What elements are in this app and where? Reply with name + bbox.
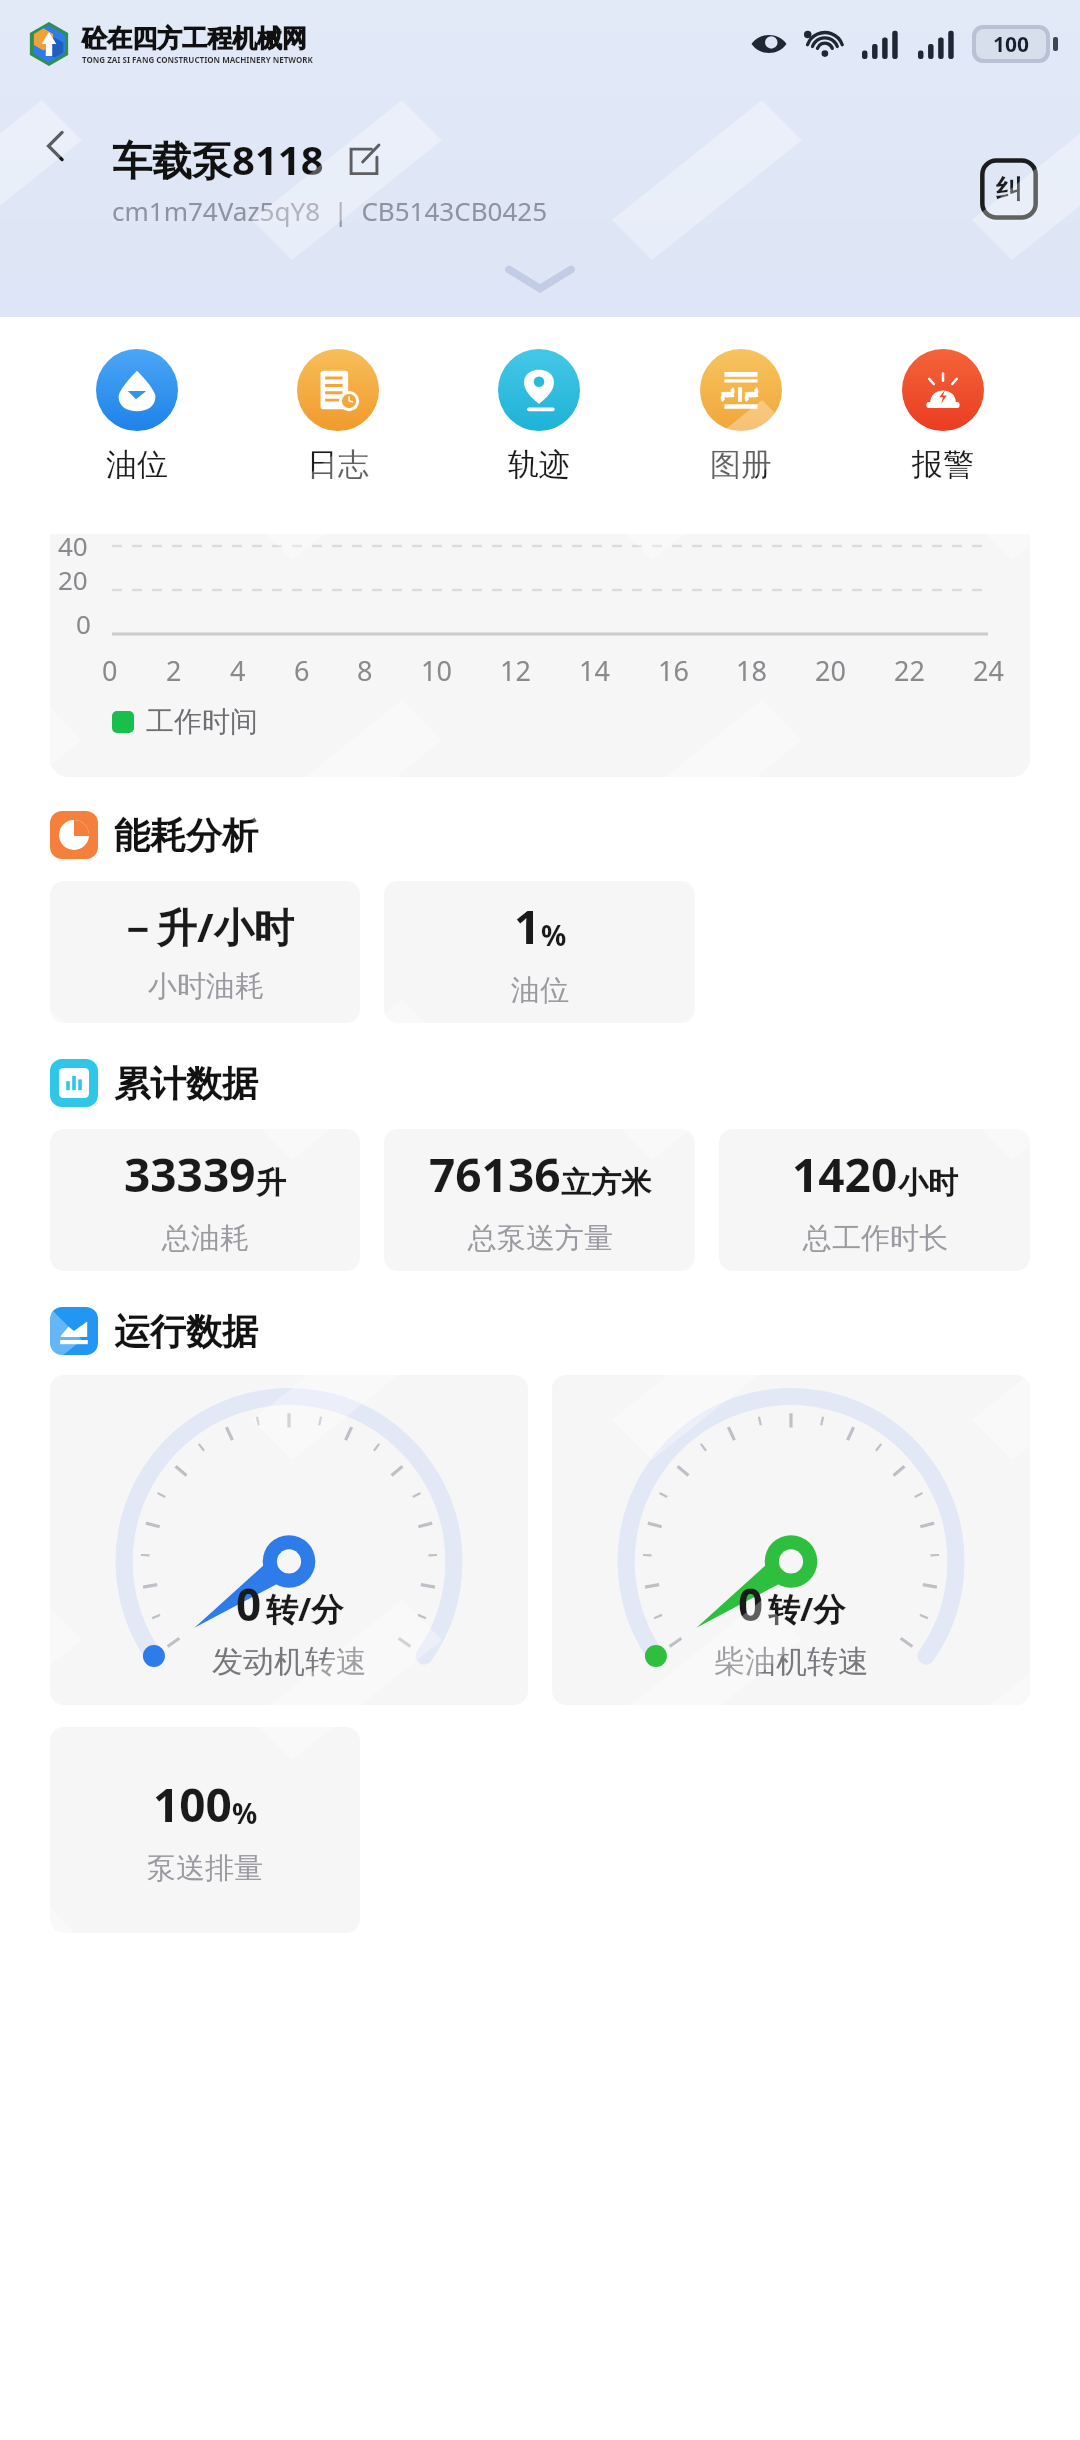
button[interactable]: Expand details: [485, 253, 595, 305]
staticText: 40: [58, 534, 88, 563]
staticText: 能耗分析: [114, 813, 258, 858]
staticText: 日志: [307, 445, 369, 484]
button[interactable]: Back: [20, 110, 92, 182]
staticText: 76136: [429, 1143, 561, 1206]
staticText: 总工作时长: [803, 1220, 948, 1257]
staticText: 14: [579, 652, 610, 689]
button[interactable]: 100: [50, 1727, 360, 1933]
button[interactable]: 76136: [384, 1129, 695, 1271]
staticText: 100: [153, 1773, 232, 1836]
staticText: cm1m74Vaz5qY8 | CB5143CB0425: [112, 193, 548, 228]
staticText: 累计数据: [114, 1061, 258, 1106]
button[interactable]: 1: [384, 881, 695, 1023]
staticText: TONG ZAI SI FANG CONSTRUCTION MACHINERY …: [82, 54, 313, 65]
staticText: 纠: [996, 173, 1022, 206]
button[interactable]: 33339: [50, 1129, 360, 1271]
staticText: 12: [500, 652, 531, 689]
button[interactable]: 日志: [237, 343, 438, 490]
button[interactable]: 40: [50, 534, 1030, 777]
staticText: 0: [76, 606, 91, 641]
staticText: 0: [236, 1574, 262, 1634]
button[interactable]: 1420: [719, 1129, 1030, 1271]
staticText: 总泵送方量: [468, 1220, 613, 1257]
staticText: 工作时间: [146, 704, 258, 739]
staticText: 柴油机转速: [714, 1642, 869, 1681]
staticText: 1420: [792, 1143, 898, 1206]
button[interactable]: 运行数据: [50, 1307, 1030, 1355]
staticText: 6: [294, 652, 310, 689]
staticText: 24: [973, 652, 1004, 689]
staticText: 转/分: [768, 1587, 846, 1631]
staticText: 车载泵8118: [112, 132, 324, 187]
button[interactable]: －升/小时: [50, 881, 360, 1023]
staticText: 升: [256, 1164, 286, 1202]
staticText: 发动机转速: [212, 1642, 367, 1681]
button[interactable]: 0: [552, 1375, 1030, 1705]
staticText: %: [541, 916, 567, 954]
staticText: 报警: [912, 445, 974, 484]
button[interactable]: 图册: [640, 343, 842, 490]
staticText: 4: [230, 652, 246, 689]
staticText: 22: [894, 652, 925, 689]
button[interactable]: 能耗分析: [50, 811, 1030, 859]
staticText: 20: [815, 652, 846, 689]
button[interactable]: 轨迹: [438, 343, 640, 490]
button[interactable]: 累计数据: [50, 1059, 1030, 1107]
staticText: 砼在四方工程机械网: [82, 23, 307, 54]
staticText: －升/小时: [117, 899, 294, 954]
staticText: 立方米: [561, 1164, 651, 1202]
button[interactable]: 0: [50, 1375, 528, 1705]
button[interactable]: 油位: [36, 343, 237, 490]
staticText: 轨迹: [508, 445, 570, 484]
staticText: 33339: [124, 1143, 256, 1206]
staticText: 1: [514, 895, 541, 958]
button[interactable]: Edit name: [342, 138, 386, 182]
staticText: 8: [357, 652, 373, 689]
staticText: 0: [102, 652, 118, 689]
staticText: 小时: [898, 1164, 958, 1202]
staticText: 0: [738, 1574, 764, 1634]
staticText: 16: [658, 652, 689, 689]
staticText: %: [232, 1794, 258, 1832]
staticText: 运行数据: [114, 1309, 258, 1354]
staticText: 20: [58, 562, 88, 597]
staticText: 小时油耗: [148, 968, 264, 1005]
staticText: 2: [166, 652, 182, 689]
staticText: 转/分: [266, 1587, 344, 1631]
staticText: 100: [993, 30, 1030, 59]
button[interactable]: 报警: [842, 343, 1044, 490]
staticText: 油位: [106, 445, 168, 484]
staticText: 10: [421, 652, 452, 689]
staticText: 泵送排量: [147, 1850, 263, 1887]
staticText: 图册: [710, 445, 772, 484]
staticText: 油位: [511, 972, 569, 1009]
button[interactable]: 纠: [978, 158, 1040, 220]
staticText: 18: [736, 652, 767, 689]
staticText: 总油耗: [162, 1220, 249, 1257]
